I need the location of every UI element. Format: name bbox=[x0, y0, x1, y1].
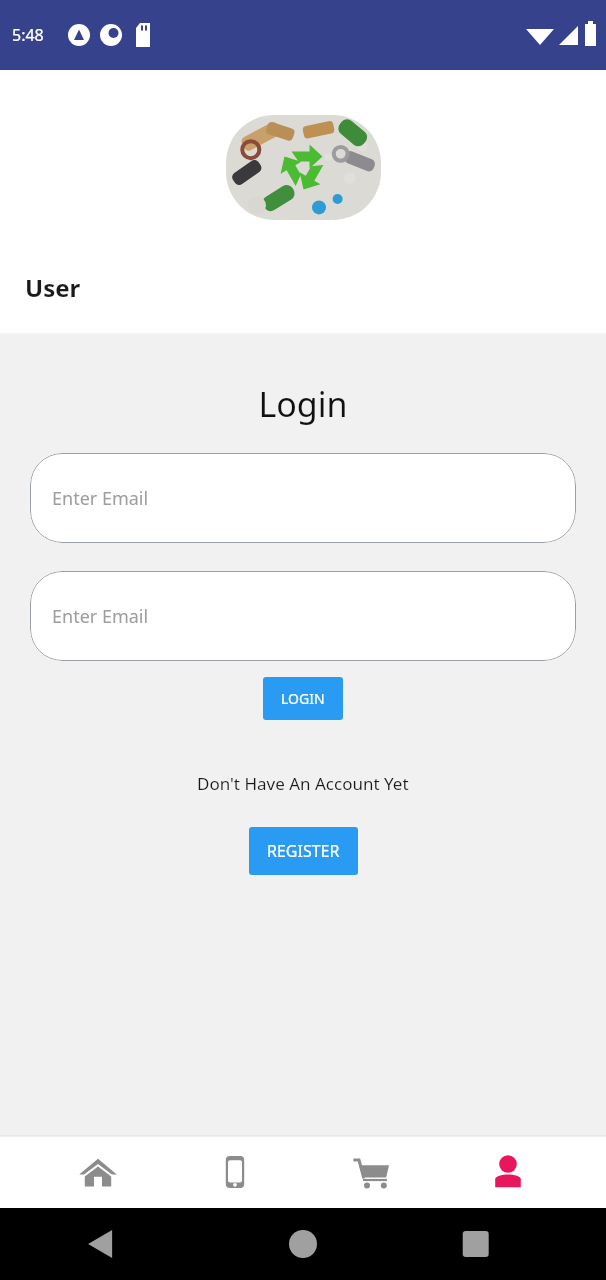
staticText: User bbox=[25, 271, 81, 304]
button[interactable]: Enter Email bbox=[30, 571, 576, 661]
button[interactable]: Home bbox=[60, 1136, 136, 1208]
button[interactable]: Enter Email bbox=[30, 453, 576, 543]
staticText: Enter Email bbox=[52, 486, 149, 511]
staticText: Login bbox=[258, 381, 348, 427]
staticText: 5:48 bbox=[12, 24, 44, 46]
button[interactable]: REGISTER bbox=[249, 827, 358, 875]
button[interactable]: Profile bbox=[470, 1136, 546, 1208]
button[interactable]: Devices bbox=[197, 1136, 273, 1208]
staticText: Don't Have An Account Yet bbox=[197, 772, 409, 795]
staticText: LOGIN bbox=[281, 689, 325, 708]
staticText: REGISTER bbox=[267, 840, 340, 862]
button[interactable]: LOGIN bbox=[263, 677, 343, 720]
button[interactable]: Cart bbox=[333, 1136, 409, 1208]
staticText: Enter Email bbox=[52, 604, 149, 629]
